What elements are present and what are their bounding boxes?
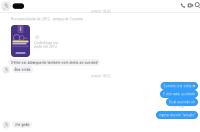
staticText: especo dos em “solução”	[159, 113, 195, 117]
button[interactable]: Search	[194, 1, 200, 9]
staticText: Comem is te edita	[164, 84, 192, 88]
staticText: Lhe gosto	[15, 122, 30, 127]
staticText: E tem twice us inform	[163, 92, 195, 96]
button[interactable]: Audio call	[179, 2, 187, 10]
staticText: Conferência em	[34, 41, 58, 45]
staticText: És só ouvindo ok	[169, 100, 195, 104]
staticText: 7:01 PM	[171, 104, 184, 109]
staticText: porto em 2012	[34, 44, 57, 49]
button[interactable]: Contact profile	[1, 1, 61, 12]
staticText: O Vitor vai subsequente também vem diret…	[11, 60, 98, 65]
staticText: ontem 18:52	[91, 74, 111, 78]
button[interactable]: Video call	[186, 1, 194, 9]
staticText: ontem 18:43	[91, 9, 111, 13]
staticText: Boa vinda	[15, 67, 31, 72]
staticText: Reencaminhada de 2012 - campus de Coimbr…	[11, 17, 83, 21]
